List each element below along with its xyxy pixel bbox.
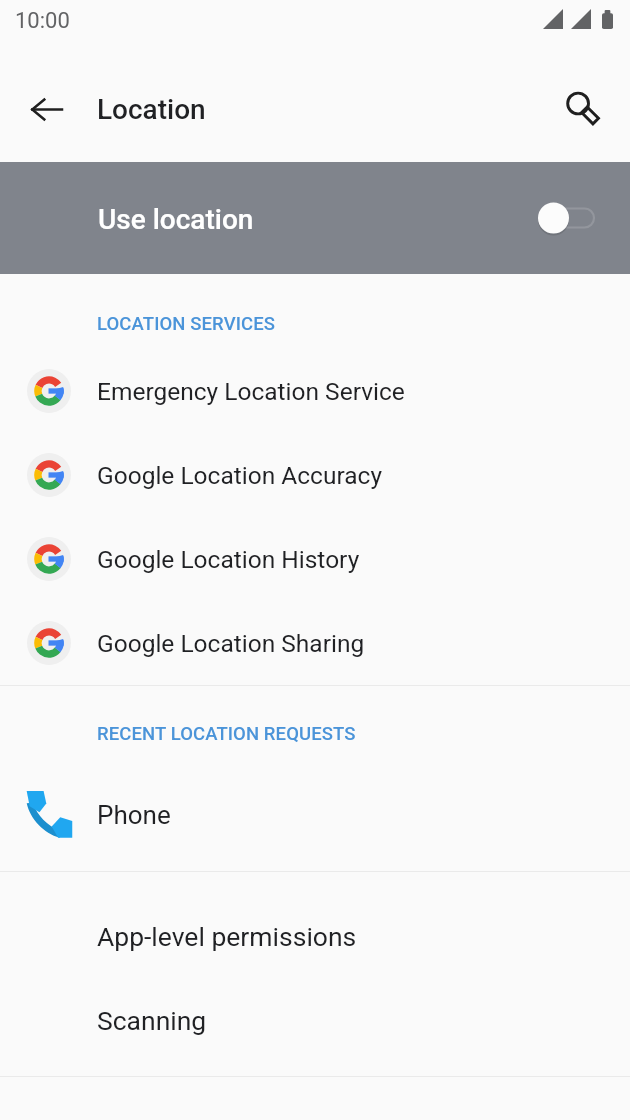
button[interactable]: Emergency Location Service <box>0 349 630 433</box>
staticText: Emergency Location Service <box>97 377 405 406</box>
button[interactable]: Search settings <box>552 77 616 141</box>
staticText: App-level permissions <box>97 921 357 952</box>
staticText: Use location <box>98 203 254 236</box>
button[interactable]: App-level permissions <box>0 872 630 980</box>
staticText: Google Location History <box>97 545 360 574</box>
button[interactable]: Navigate up <box>14 77 78 141</box>
staticText: Phone <box>97 800 171 830</box>
button[interactable]: Google Location History <box>0 517 630 601</box>
button[interactable]: Use location <box>0 162 630 274</box>
button[interactable]: Phone <box>0 773 630 857</box>
staticText: RECENT LOCATION REQUESTS <box>97 723 356 745</box>
staticText: LOCATION SERVICES <box>97 313 276 335</box>
staticText: Google Location Sharing <box>97 629 365 658</box>
button[interactable]: Scanning <box>0 980 630 1076</box>
button[interactable]: Google Location Accuracy <box>0 433 630 517</box>
staticText: Scanning <box>97 1005 207 1036</box>
button[interactable]: Google Location Sharing <box>0 601 630 685</box>
staticText: Location <box>97 93 206 126</box>
staticText: Google Location Accuracy <box>97 461 382 490</box>
staticText: 10:00 <box>15 8 70 34</box>
